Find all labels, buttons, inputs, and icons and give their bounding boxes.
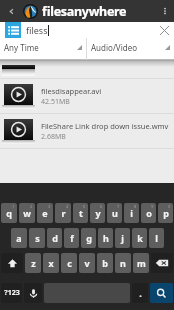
button[interactable]: a [11, 228, 27, 248]
button[interactable]: l [149, 228, 164, 248]
button[interactable]: del [151, 253, 173, 273]
button[interactable]: d [47, 228, 62, 248]
staticText: Audio/Video [91, 42, 137, 53]
button[interactable]: search [150, 283, 173, 303]
button[interactable]: Clear search [154, 22, 174, 38]
staticText: 2.68MB [41, 132, 66, 142]
button[interactable]: FileShare Link drop down issue.wmv [0, 114, 174, 148]
button[interactable]: f [64, 228, 79, 248]
button[interactable]: Audio/Video [87, 38, 174, 60]
staticText: f [70, 232, 74, 244]
button[interactable]: Any Time [0, 38, 86, 60]
button[interactable]: q [1, 203, 17, 223]
staticText: j [121, 232, 124, 244]
staticText: 42.51MB [41, 97, 70, 107]
staticText: w [23, 207, 31, 219]
button[interactable]: m [133, 253, 149, 273]
staticText: i [130, 207, 133, 219]
staticText: h [103, 232, 109, 244]
staticText: y [95, 207, 101, 219]
staticText: 9 [151, 204, 154, 209]
staticText: 0 [168, 204, 171, 209]
staticText: Any Time [4, 42, 39, 53]
button[interactable]: w [19, 203, 35, 223]
staticText: v [84, 257, 90, 269]
staticText: l [155, 232, 158, 244]
staticText: 1 [12, 204, 15, 209]
button[interactable]: n [115, 253, 131, 273]
staticText: ?123 [4, 288, 20, 298]
staticText: a [16, 232, 22, 244]
button[interactable]: Search scope [5, 22, 21, 38]
button[interactable]: p [158, 203, 173, 223]
button[interactable]: c [61, 253, 77, 273]
staticText: b [102, 257, 108, 269]
button[interactable]: k [132, 228, 147, 248]
staticText: n [120, 257, 126, 269]
staticText: x [48, 257, 54, 269]
staticText: 2 [30, 204, 33, 209]
staticText: filesdisappear.avi [41, 86, 102, 96]
staticText: z [31, 257, 36, 269]
button[interactable]: x [43, 253, 59, 273]
button[interactable]: mic [24, 283, 42, 303]
staticText: t [79, 207, 83, 219]
staticText: 7 [117, 204, 120, 209]
staticText: filesanywhere [42, 3, 127, 20]
staticText: . [139, 287, 142, 299]
button[interactable]: Back [0, 0, 22, 22]
staticText: e [42, 207, 48, 219]
button[interactable]: u [107, 203, 122, 223]
staticText: c [67, 257, 72, 269]
button[interactable]: . [132, 283, 148, 303]
staticText: 8 [134, 204, 137, 209]
button[interactable]: j [115, 228, 130, 248]
staticText: 4 [66, 204, 69, 209]
staticText: 6 [100, 204, 103, 209]
button[interactable]: s [29, 228, 45, 248]
staticText: m [137, 257, 146, 269]
staticText: 5 [83, 204, 86, 209]
staticText: q [6, 207, 12, 219]
button[interactable]: h [98, 228, 113, 248]
button[interactable]: More options [156, 0, 174, 22]
button[interactable]: o [141, 203, 156, 223]
button[interactable]: v [79, 253, 95, 273]
staticText: k [137, 232, 143, 244]
button[interactable]: ?123 [1, 283, 22, 303]
staticText: p [163, 207, 169, 219]
button[interactable]: t [73, 203, 88, 223]
staticText: u [112, 207, 118, 219]
staticText: d [52, 232, 58, 244]
button[interactable]: z [25, 253, 41, 273]
staticText: g [86, 232, 92, 244]
button[interactable]: r [55, 203, 71, 223]
staticText: s [35, 232, 40, 244]
button[interactable]: b [97, 253, 113, 273]
button[interactable]: y [90, 203, 105, 223]
button[interactable]: e [37, 203, 53, 223]
button[interactable]: i [124, 203, 139, 223]
staticText: o [146, 207, 152, 219]
staticText: r [61, 207, 66, 219]
button[interactable]: filesdisappear.avi [0, 79, 174, 113]
button[interactable]: shift [1, 253, 23, 273]
staticText: filess [26, 24, 48, 36]
button[interactable]: g [81, 228, 96, 248]
staticText: 3 [48, 204, 51, 209]
staticText: FileShare Link drop down issue.wmv [41, 121, 169, 131]
